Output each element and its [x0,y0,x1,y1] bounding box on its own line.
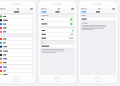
button[interactable] [0,73,34,76]
button[interactable] [40,29,75,32]
button[interactable] [80,17,116,21]
button[interactable] [0,57,34,60]
button[interactable] [0,69,34,73]
button[interactable] [40,36,75,40]
button[interactable]: Back [40,10,75,14]
button[interactable] [0,65,34,69]
button[interactable] [0,41,34,45]
button[interactable] [0,18,34,22]
button[interactable] [0,26,34,30]
button[interactable] [0,45,34,48]
button[interactable] [0,37,34,41]
button[interactable]: Back [80,10,116,14]
button[interactable] [40,33,75,36]
button[interactable] [0,61,34,64]
button[interactable] [0,22,34,26]
button[interactable] [0,83,34,86]
button[interactable] [40,17,75,21]
button[interactable] [40,44,75,48]
button[interactable] [0,77,34,80]
button[interactable] [0,15,34,18]
button[interactable] [0,49,34,53]
button[interactable] [0,53,34,57]
button[interactable] [0,30,34,34]
button[interactable] [40,22,75,26]
